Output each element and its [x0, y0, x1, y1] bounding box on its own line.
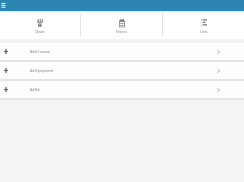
button[interactable]: Events: [81, 11, 162, 39]
button[interactable]: Add Custom: [0, 43, 244, 60]
button[interactable]: AdTek: [0, 81, 244, 98]
staticText: Lists: [200, 29, 208, 34]
staticText: Deals: [35, 29, 45, 34]
staticText: AdTek: [30, 87, 40, 92]
staticText: Ad Equipment: [30, 68, 54, 73]
button[interactable]: Deals: [0, 11, 80, 39]
button[interactable]: Ad Equipment: [0, 62, 244, 79]
button[interactable]: Lists: [163, 11, 244, 39]
staticText: Events: [116, 29, 127, 34]
button[interactable]: Open navigation menu: [0, 0, 11, 11]
staticText: Add Custom: [30, 49, 51, 54]
